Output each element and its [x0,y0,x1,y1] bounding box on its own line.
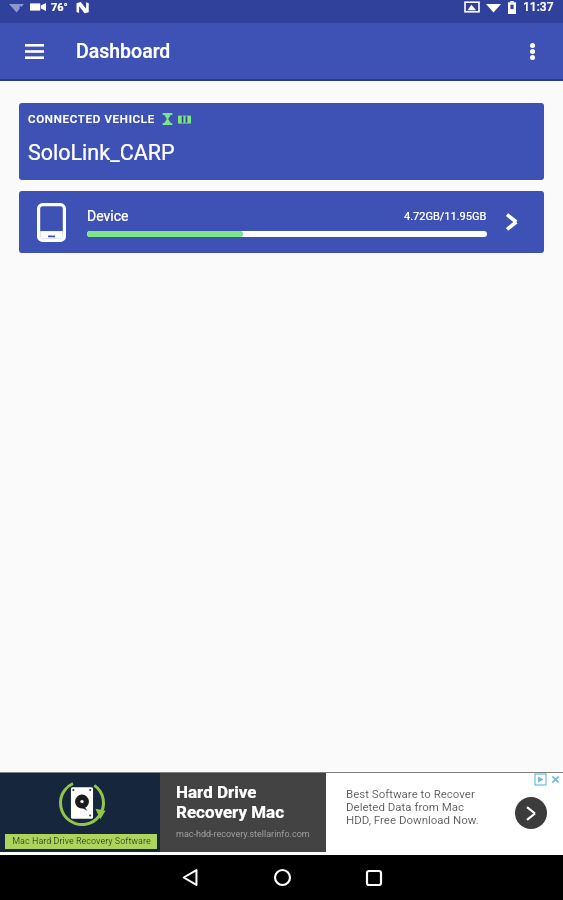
button[interactable]: Home [252,855,312,900]
button[interactable]: Open navigation drawer [0,23,68,79]
staticText: Dashboard [76,40,171,63]
staticText: HDD, Free Download Now. [346,813,479,826]
staticText: Device [87,208,129,224]
staticText: 11:37 [523,0,554,14]
staticText: Deleted Data from Mac [346,800,465,813]
button[interactable]: Device [19,191,544,253]
button[interactable]: More options [508,23,556,79]
button[interactable]: Recent apps [344,855,404,900]
staticText: mac-hdd-recovery.stellarinfo.com [176,829,310,840]
staticText: Hard Drive [176,782,257,802]
staticText: CONNECTED VEHICLE [28,112,155,125]
button[interactable]: Open advertisement [515,797,547,829]
staticText: 76° [51,1,68,14]
staticText: Recovery Mac [176,802,285,822]
staticText: Best Software to Recover [346,787,475,800]
button[interactable]: Back [160,855,220,900]
staticText: Mac Hard Drive Recovery Software [12,836,151,847]
button[interactable]: Mac Hard Drive Recovery Software [0,773,563,852]
staticText: SoloLink_CARP [28,140,175,165]
staticText: 4.72GB/11.95GB [404,210,487,223]
button[interactable]: CONNECTED VEHICLE [19,103,544,180]
